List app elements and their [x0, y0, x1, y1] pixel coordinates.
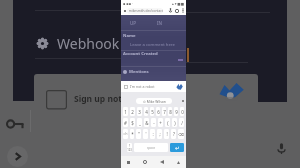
staticText: #: [124, 120, 127, 126]
button[interactable]: 5: [150, 107, 154, 116]
other: Voice search: [169, 8, 172, 13]
staticText: /: [181, 120, 183, 126]
staticText: ': [145, 131, 147, 137]
button[interactable]: :: [150, 129, 155, 139]
other: Account: [175, 9, 179, 13]
button[interactable]: ⊙ Mike Wilson: [136, 98, 172, 104]
staticText: Leave a comment here: [130, 42, 175, 48]
staticText: ↵: [175, 145, 180, 151]
staticText: 1: [124, 109, 127, 115]
button[interactable]: -: [151, 118, 156, 127]
button[interactable]: Home: [143, 160, 147, 164]
button[interactable]: 2: [130, 107, 135, 116]
staticText: &: [145, 120, 149, 126]
button[interactable]: ): [172, 118, 177, 127]
button[interactable]: _: [137, 118, 142, 127]
button[interactable]: $: [130, 118, 135, 127]
staticText: ): [174, 120, 176, 126]
staticText: ⊙ Mike Wilson: [143, 99, 166, 104]
staticText: 6: [157, 109, 160, 115]
staticText: ▴ ▾ ■■: [172, 1, 184, 6]
staticText: _: [139, 120, 141, 126]
button[interactable]: ?: [171, 129, 176, 139]
button[interactable]: !: [164, 129, 169, 139]
staticText: 8: [169, 109, 172, 115]
button[interactable]: Space: [134, 143, 168, 152]
staticText: Mentions: [129, 69, 149, 75]
staticText: Sign up not: [74, 93, 122, 105]
staticText: $: [131, 120, 134, 126]
staticText: ;: [159, 131, 161, 137]
staticText: +: [159, 120, 162, 126]
button[interactable]: ": [136, 129, 141, 139]
button[interactable]: Next video: [7, 146, 28, 167]
staticText: 0: [181, 109, 184, 115]
button[interactable]: 3: [137, 107, 142, 116]
staticText: mikesmith.dev/contact: [128, 9, 163, 13]
staticText: space: [147, 146, 156, 150]
button[interactable]: ': [143, 129, 148, 139]
staticText: *: [131, 131, 134, 137]
button[interactable]: 0: [180, 107, 184, 116]
button[interactable]: mikesmith.dev/contact: [127, 8, 163, 14]
staticText: Name: [123, 33, 136, 39]
button[interactable]: Back: [160, 160, 164, 164]
button[interactable]: ?123: [127, 143, 132, 152]
button[interactable]: 4: [144, 107, 148, 116]
staticText: ▪ ▪▪ ·: [123, 1, 133, 6]
staticText: UP: [130, 20, 137, 26]
button[interactable]: &: [144, 118, 149, 127]
staticText: ?123: [127, 144, 132, 152]
staticText: :: [152, 131, 154, 137]
staticText: Webhook: [57, 34, 120, 53]
staticText: 9: [175, 109, 178, 115]
button[interactable]: *: [130, 129, 134, 139]
button[interactable]: +: [158, 118, 163, 127]
staticText: ": [138, 131, 140, 137]
staticText: 5: [151, 109, 154, 115]
staticText: I'm not a robot: [130, 84, 155, 89]
button[interactable]: #: [123, 118, 128, 127]
button[interactable]: (: [165, 118, 170, 127]
button[interactable]: 9: [174, 107, 178, 116]
other: More options: [182, 8, 184, 13]
staticText: -: [153, 120, 155, 126]
staticText: 3: [138, 109, 141, 115]
button[interactable]: =\<: [123, 129, 128, 139]
staticText: 4: [145, 109, 148, 115]
staticText: !: [166, 131, 168, 137]
staticText: ?: [173, 131, 175, 137]
staticText: 7: [163, 109, 166, 115]
button[interactable]: 7: [162, 107, 166, 116]
button[interactable]: Keyboard options: [177, 161, 180, 164]
button[interactable]: 8: [168, 107, 172, 116]
button[interactable]: 6: [156, 107, 160, 116]
button[interactable]: Microphone: [271, 138, 291, 158]
staticText: (: [167, 120, 169, 126]
button[interactable]: 1: [123, 107, 128, 116]
staticText: 2: [131, 109, 134, 115]
staticText: Account Created: [123, 51, 158, 57]
button[interactable]: ⌫: [178, 129, 184, 139]
button[interactable]: /: [179, 118, 184, 127]
button[interactable]: ;: [157, 129, 162, 139]
button[interactable]: Password key: [3, 112, 27, 136]
staticText: ⌫: [178, 132, 184, 137]
button[interactable]: Enter: [170, 143, 184, 152]
staticText: =\<: [123, 132, 128, 136]
staticText: IN: [157, 20, 163, 26]
